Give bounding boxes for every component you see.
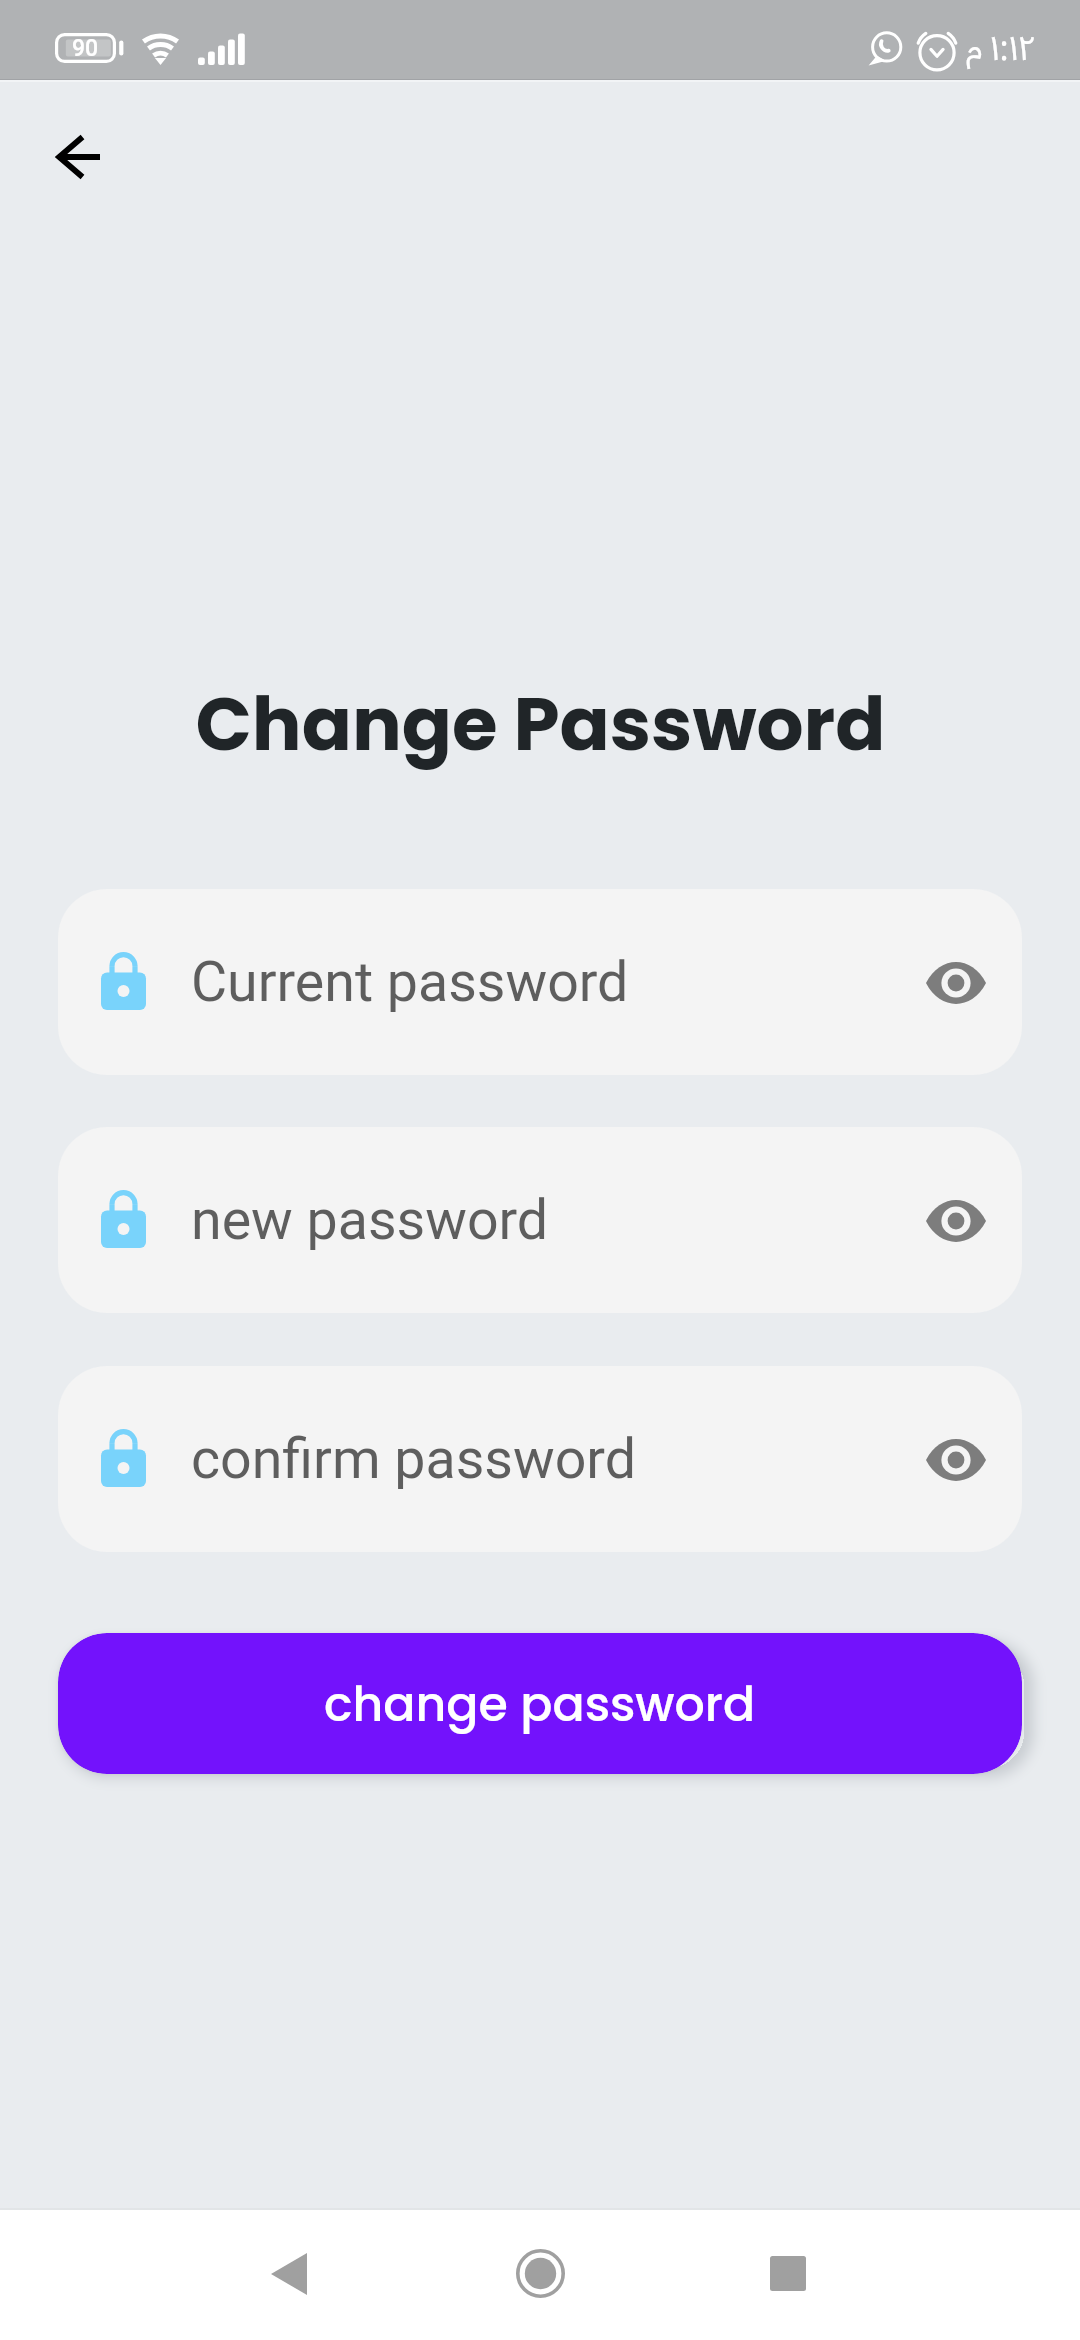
staticText: Current password [191,950,629,1015]
button[interactable]: Recents [728,2213,848,2333]
button[interactable]: Current password [58,889,1022,1075]
button[interactable]: Back [28,107,128,207]
staticText: new password [191,1188,549,1253]
button[interactable]: Show password [916,943,996,1023]
staticText: ١:١٢ [990,24,1035,70]
button[interactable]: Show password [916,1181,996,1261]
button[interactable]: confirm password [58,1366,1022,1552]
button[interactable]: change password [58,1633,1022,1774]
button[interactable]: new password [58,1127,1022,1313]
staticText: م [966,24,983,70]
button[interactable]: Show password [916,1420,996,1500]
staticText: 90 [72,35,99,62]
button[interactable]: Back [229,2214,349,2334]
staticText: change password [324,1671,756,1737]
button[interactable]: Home [480,2213,600,2333]
staticText: Change Password [195,672,886,776]
staticText: confirm password [191,1427,636,1492]
